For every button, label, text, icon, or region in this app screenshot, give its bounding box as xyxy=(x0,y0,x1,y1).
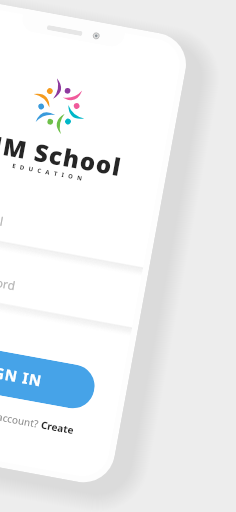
staticText: MM School xyxy=(0,125,125,183)
staticText: Email xyxy=(0,208,5,229)
button[interactable]: SIGN IN xyxy=(0,338,98,412)
staticText: SIGN IN xyxy=(0,359,44,391)
staticText: Create xyxy=(40,417,75,437)
button[interactable]: Password xyxy=(0,247,139,327)
button[interactable]: Email xyxy=(0,187,150,267)
staticText: E D U C A T I O N xyxy=(12,162,84,183)
staticText: Password xyxy=(0,268,17,293)
button[interactable]: Don't have an account? xyxy=(0,397,75,437)
staticText: Don't have an account? xyxy=(0,397,42,431)
